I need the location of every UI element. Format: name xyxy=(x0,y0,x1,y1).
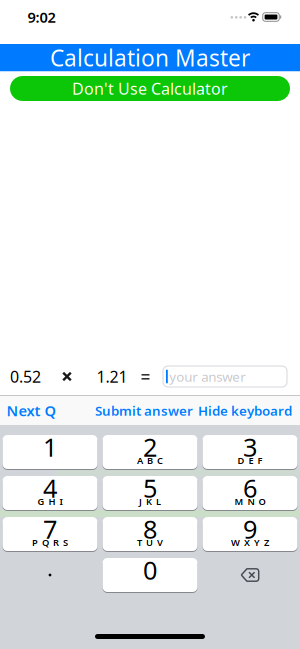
button[interactable]: 3 xyxy=(202,435,297,469)
staticText: 2 xyxy=(143,430,157,464)
button[interactable]: Submit answer xyxy=(95,402,193,419)
staticText: Hide keyboard xyxy=(198,402,292,419)
button[interactable]: 2 xyxy=(102,435,197,469)
staticText: 5 xyxy=(143,471,157,505)
staticText: 0.52 xyxy=(10,366,41,387)
button[interactable]: your answer xyxy=(163,366,287,387)
staticText: 1 xyxy=(43,430,57,464)
staticText: 3 xyxy=(243,430,257,464)
staticText: 1.21 xyxy=(96,366,127,387)
button[interactable]: Delete xyxy=(202,558,297,592)
button[interactable]: Next Q xyxy=(6,401,56,420)
button[interactable]: Hide keyboard xyxy=(198,402,292,419)
staticText: Don't Use Calculator xyxy=(72,78,228,99)
button[interactable]: 4 xyxy=(2,476,97,510)
button[interactable]: Decimal point xyxy=(2,558,97,592)
staticText: 8 xyxy=(143,512,157,546)
staticText: 0 xyxy=(143,553,157,587)
staticText: G H I xyxy=(37,495,62,508)
staticText: A B C xyxy=(137,454,163,467)
staticText: = xyxy=(140,365,150,388)
staticText xyxy=(49,454,51,467)
staticText: D E F xyxy=(237,454,262,467)
button[interactable]: 6 xyxy=(202,476,297,510)
button[interactable]: 0 xyxy=(102,558,197,592)
button[interactable]: Don't Use Calculator xyxy=(10,76,290,101)
staticText: 9 xyxy=(243,512,257,546)
staticText: Calculation Master xyxy=(50,43,250,73)
staticText: 7 xyxy=(43,512,57,546)
staticText: W X Y Z xyxy=(231,536,269,549)
staticText: Submit answer xyxy=(95,402,193,419)
staticText: P Q R S xyxy=(32,536,68,549)
staticText: 6 xyxy=(243,471,257,505)
staticText: 9:02 xyxy=(27,7,55,27)
button[interactable]: 9 xyxy=(202,517,297,551)
staticText: your answer xyxy=(169,368,246,385)
button[interactable]: 7 xyxy=(2,517,97,551)
staticText xyxy=(149,577,151,590)
staticText: M N O xyxy=(234,495,265,508)
staticText: T U V xyxy=(137,536,163,549)
button[interactable]: 5 xyxy=(102,476,197,510)
button[interactable]: 8 xyxy=(102,517,197,551)
staticText: J K L xyxy=(139,495,161,508)
staticText: 4 xyxy=(43,471,57,505)
button[interactable]: 1 xyxy=(2,435,97,469)
staticText: Next Q xyxy=(6,401,56,420)
